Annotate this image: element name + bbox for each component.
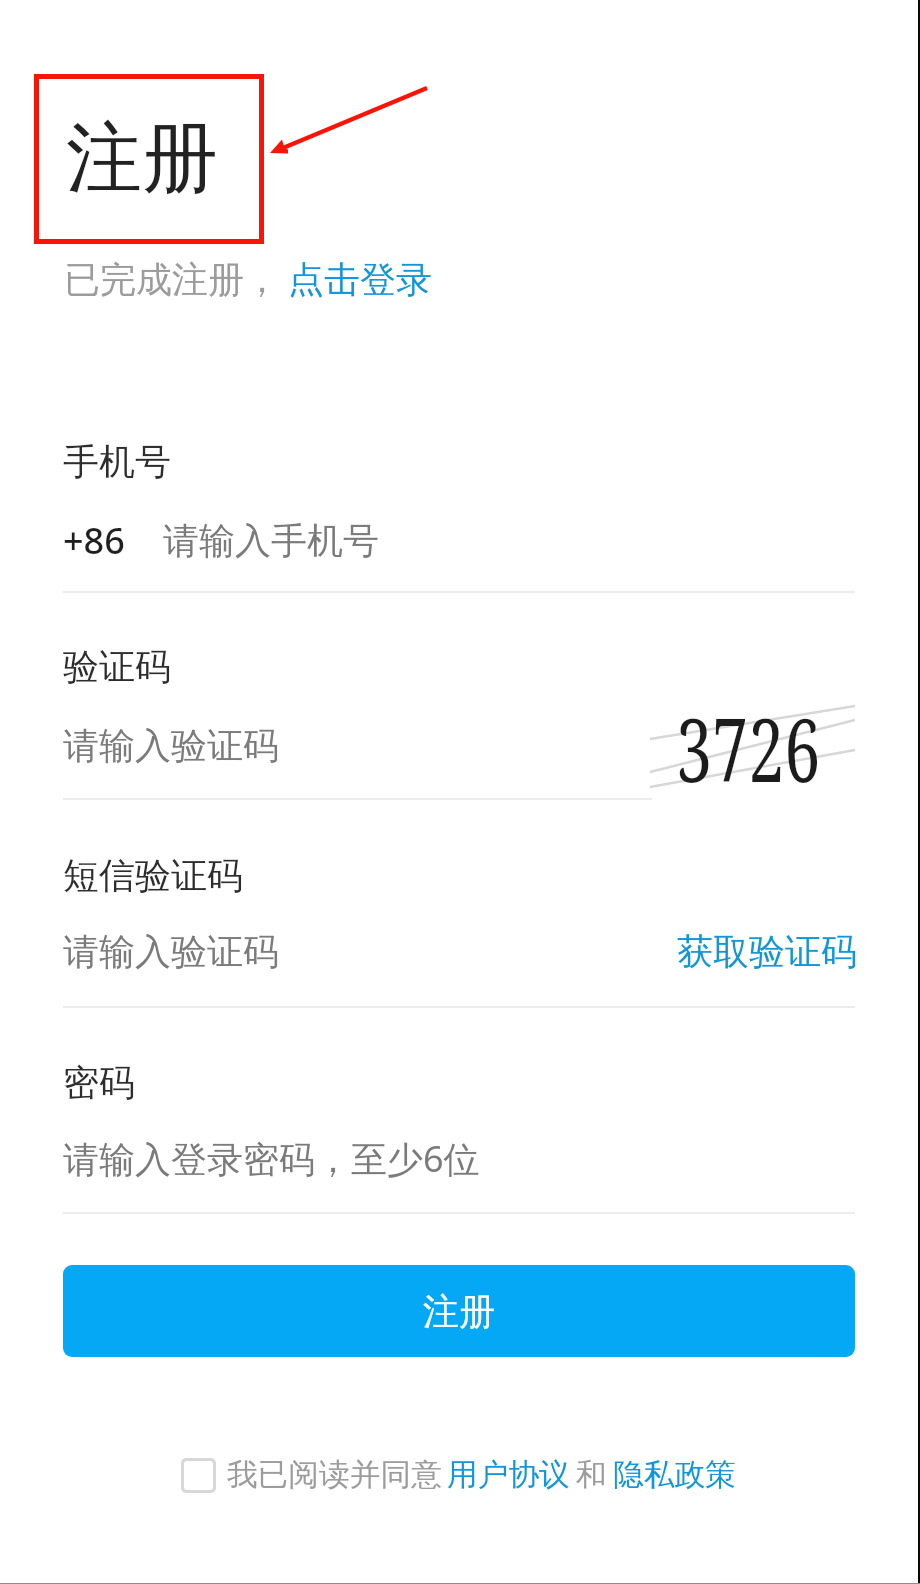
staticText: 密码 <box>63 1060 135 1105</box>
staticText: 获取验证码 <box>677 929 857 974</box>
staticText: 我已阅读并同意 <box>227 1455 442 1494</box>
staticText: 验证码 <box>63 644 171 689</box>
staticText: 短信验证码 <box>63 853 243 898</box>
staticText: 请输入验证码 <box>63 929 279 974</box>
button[interactable]: 点击登录 <box>288 257 432 302</box>
staticText: 和 <box>576 1455 607 1494</box>
staticText: 注册 <box>66 111 218 207</box>
staticText: 请输入手机号 <box>163 518 379 563</box>
button[interactable]: Agree to terms checkbox <box>180 1457 216 1493</box>
staticText: 请输入登录密码，至少6位 <box>63 1134 480 1183</box>
staticText: +86 <box>63 516 125 565</box>
staticText: 手机号 <box>63 439 171 484</box>
button[interactable]: 隐私政策 <box>613 1455 736 1494</box>
staticText: 隐私政策 <box>613 1455 736 1494</box>
staticText: 请输入验证码 <box>63 723 279 768</box>
staticText: 已完成注册， <box>64 257 280 302</box>
staticText: 用户协议 <box>447 1455 570 1494</box>
button[interactable]: 获取验证码 <box>677 929 857 974</box>
staticText: 3726 <box>676 688 821 797</box>
staticText: 点击登录 <box>288 257 432 302</box>
button[interactable]: 注册 <box>63 1265 855 1357</box>
button[interactable]: 用户协议 <box>447 1455 570 1494</box>
button[interactable]: Captcha image, tap to refresh <box>640 690 860 802</box>
staticText: 注册 <box>423 1289 495 1334</box>
